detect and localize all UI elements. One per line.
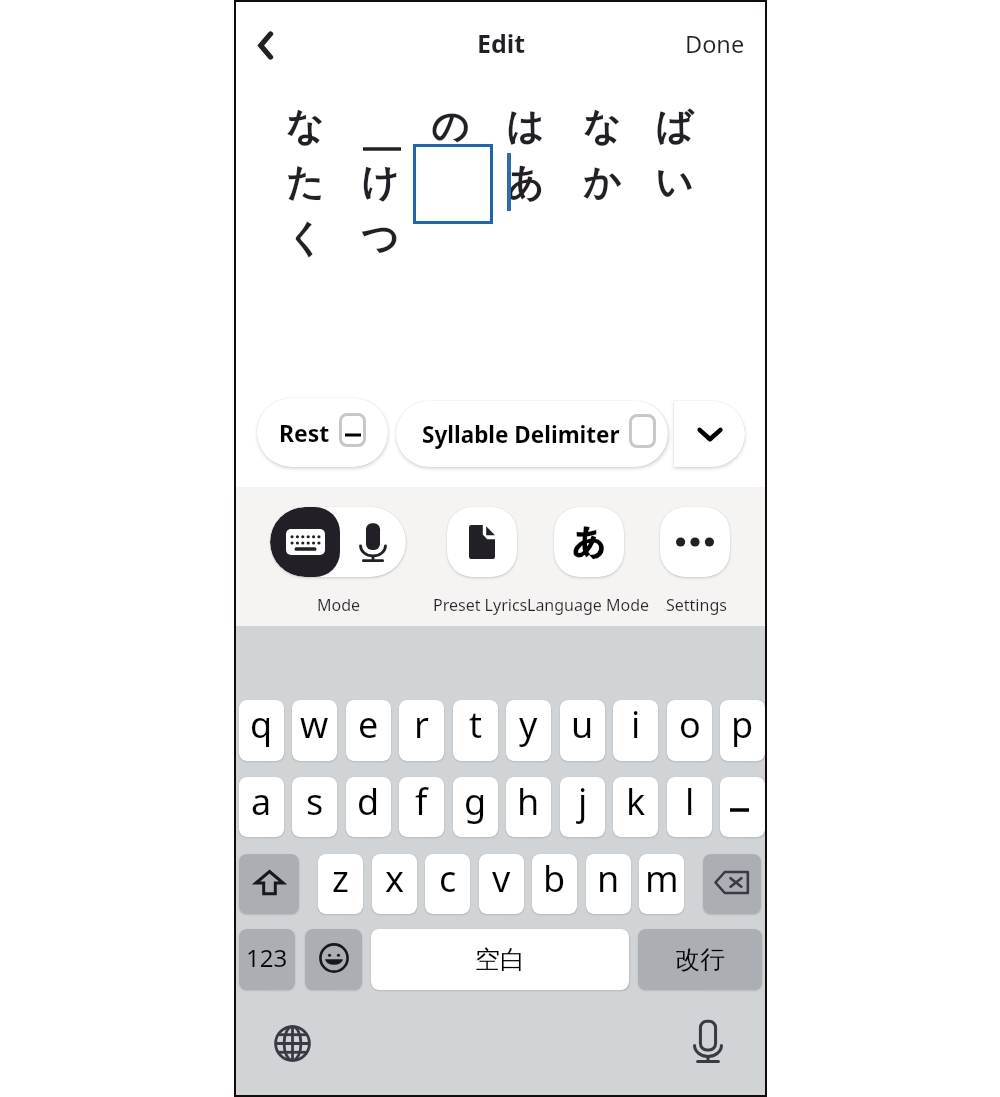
button[interactable]: g: [453, 777, 498, 837]
staticText: g: [464, 777, 487, 826]
button[interactable]: j: [560, 777, 605, 837]
button[interactable]: Edit: [441, 20, 562, 66]
staticText: Settings: [666, 594, 727, 616]
staticText: t: [469, 700, 482, 749]
staticText: た: [286, 159, 324, 206]
staticText: 改行: [675, 944, 725, 975]
staticText: な: [583, 103, 621, 150]
staticText: e: [358, 700, 379, 749]
button[interactable]: Language Mode: [554, 507, 624, 577]
button[interactable]: e: [346, 700, 391, 761]
button[interactable]: 改行: [638, 929, 762, 990]
staticText: b: [543, 854, 566, 903]
staticText: j: [578, 777, 588, 826]
staticText: s: [306, 777, 324, 826]
button[interactable]: Voice input: [340, 507, 406, 577]
staticText: c: [439, 854, 457, 903]
staticText: の: [431, 103, 469, 150]
staticText: あ: [506, 159, 544, 206]
button[interactable]: w: [292, 700, 337, 761]
button[interactable]: c: [425, 854, 470, 914]
button[interactable]: o: [667, 700, 712, 761]
staticText: i: [631, 700, 641, 749]
button[interactable]: 123: [239, 929, 295, 990]
button[interactable]: y: [506, 700, 551, 761]
button[interactable]: Backspace: [703, 854, 761, 914]
staticText: p: [731, 700, 754, 749]
button[interactable]: u: [560, 700, 605, 761]
button[interactable]: Done: [676, 21, 754, 67]
staticText: は: [506, 103, 544, 150]
staticText: つ: [361, 215, 399, 262]
staticText: r: [414, 700, 429, 749]
staticText: z: [332, 854, 349, 903]
button[interactable]: Shift: [239, 854, 299, 914]
button[interactable]: Settings: [660, 507, 730, 577]
button[interactable]: i: [613, 700, 658, 761]
staticText: y: [519, 700, 538, 749]
staticText: あ: [572, 521, 606, 563]
button[interactable]: Back: [243, 22, 289, 68]
staticText: l: [685, 777, 695, 826]
staticText: u: [571, 700, 594, 749]
button[interactable]: Empty note: [413, 144, 493, 224]
button[interactable]: v: [479, 854, 524, 914]
button[interactable]: h: [506, 777, 551, 837]
staticText: Mode: [317, 594, 361, 616]
staticText: f: [415, 777, 428, 826]
button[interactable]: n: [586, 854, 631, 914]
staticText: n: [597, 854, 620, 903]
staticText: x: [385, 854, 405, 903]
button[interactable]: 空白: [371, 929, 629, 990]
staticText: h: [517, 777, 540, 826]
button[interactable]: More options: [674, 401, 745, 467]
button[interactable]: Dictate: [681, 1015, 735, 1069]
button[interactable]: [720, 777, 765, 837]
staticText: い: [655, 159, 693, 206]
button[interactable]: p: [720, 700, 765, 761]
button[interactable]: k: [613, 777, 658, 837]
staticText: Language Mode: [527, 594, 650, 616]
button[interactable]: r: [399, 700, 444, 761]
button[interactable]: d: [346, 777, 391, 837]
staticText: か: [583, 159, 621, 206]
staticText: け: [361, 159, 399, 206]
button[interactable]: Rest: [257, 398, 388, 467]
button[interactable]: Change language: [265, 1016, 319, 1070]
staticText: m: [645, 854, 679, 903]
staticText: Done: [685, 28, 745, 60]
staticText: d: [357, 777, 380, 826]
button[interactable]: s: [292, 777, 337, 837]
button[interactable]: Keyboard input: [270, 507, 340, 577]
staticText: q: [250, 700, 273, 749]
button[interactable]: t: [453, 700, 498, 761]
button[interactable]: m: [639, 854, 684, 914]
staticText: Rest: [279, 417, 330, 448]
staticText: a: [251, 777, 272, 826]
staticText: 空白: [475, 944, 525, 975]
button[interactable]: l: [667, 777, 712, 837]
staticText: v: [492, 854, 511, 903]
staticText: 123: [246, 941, 288, 974]
button[interactable]: Emoji: [305, 929, 362, 990]
staticText: な: [286, 103, 324, 150]
button[interactable]: z: [318, 854, 363, 914]
button[interactable]: b: [532, 854, 577, 914]
staticText: w: [300, 700, 329, 749]
button[interactable]: f: [399, 777, 444, 837]
staticText: o: [679, 700, 701, 749]
button[interactable]: q: [239, 700, 284, 761]
button[interactable]: Preset Lyrics: [447, 507, 517, 577]
button[interactable]: x: [372, 854, 417, 914]
staticText: く: [286, 215, 324, 262]
staticText: k: [626, 777, 646, 826]
staticText: Preset Lyrics: [433, 594, 528, 616]
button[interactable]: a: [239, 777, 284, 837]
staticText: Edit: [477, 26, 526, 60]
staticText: ば: [655, 103, 693, 150]
button[interactable]: Syllable Delimiter: [396, 401, 668, 467]
staticText: Syllable Delimiter: [422, 419, 620, 450]
